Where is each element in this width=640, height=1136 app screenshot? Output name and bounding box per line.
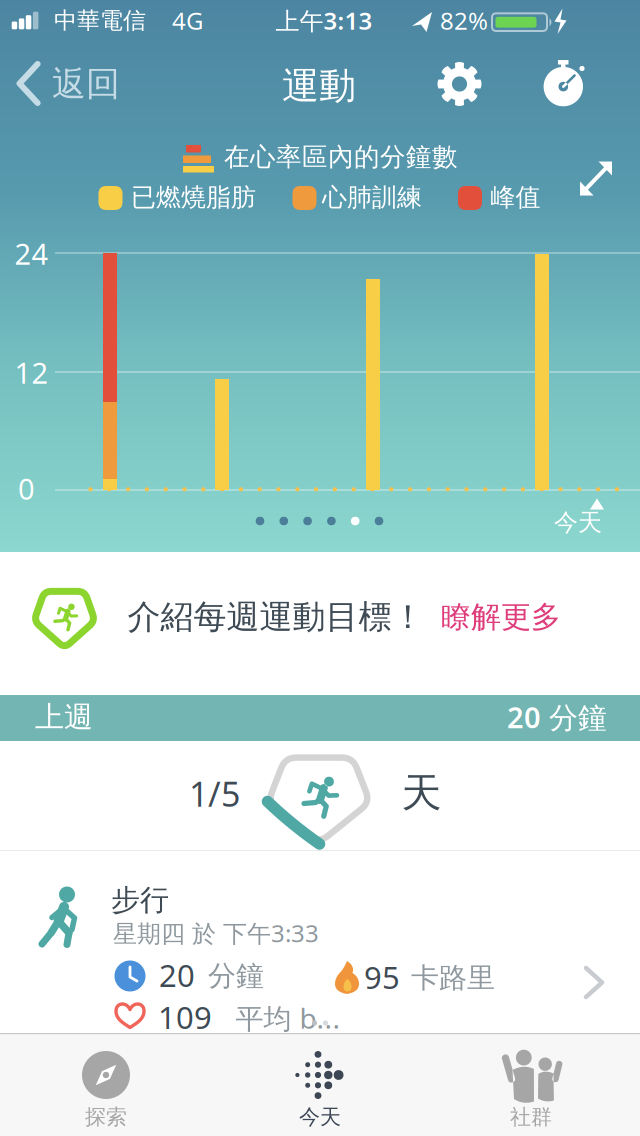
button[interactable]: 探索 xyxy=(0,1033,212,1136)
staticText: 今天 xyxy=(299,1104,341,1130)
staticText: 星期四 於 下午3:33 xyxy=(113,917,319,949)
staticText: 瞭解更多 xyxy=(441,598,561,636)
staticText: 已燃燒脂肪 xyxy=(131,182,256,213)
staticText: 上午3:13 xyxy=(275,4,372,37)
staticText: 運動 xyxy=(282,63,356,109)
staticText: 平均 b... xyxy=(235,999,340,1037)
staticText: 1/5 xyxy=(189,770,240,817)
staticText: 介紹每週運動目標！ xyxy=(127,596,424,638)
staticText: 109 xyxy=(158,996,212,1038)
button[interactable]: 步行 xyxy=(0,851,640,1033)
staticText: 0 xyxy=(18,469,35,508)
button[interactable]: 瞭解更多 xyxy=(0,552,640,695)
staticText: 探索 xyxy=(85,1104,127,1130)
staticText: 返回 xyxy=(52,63,120,105)
staticText: 峰值 xyxy=(490,182,540,213)
button[interactable]: 設定 xyxy=(431,56,487,112)
button[interactable]: 返回 xyxy=(0,54,124,118)
button[interactable]: 碼錶 xyxy=(532,55,598,115)
staticText: 心肺訓練 xyxy=(322,182,422,213)
staticText: 卡路里 xyxy=(411,960,495,996)
button[interactable]: 今天 xyxy=(214,1033,426,1136)
staticText: 今天 xyxy=(554,507,602,538)
staticText: 20 分鐘 xyxy=(507,697,607,737)
staticText: 上週 xyxy=(35,699,93,735)
staticText: 24 xyxy=(14,234,48,273)
staticText: 天 xyxy=(401,768,441,818)
staticText: 82% xyxy=(440,4,488,37)
staticText: 中華電信 xyxy=(54,6,146,35)
staticText: 20 xyxy=(159,954,195,996)
staticText: 步行 xyxy=(111,882,169,918)
staticText: 社群 xyxy=(510,1104,552,1130)
button[interactable]: 社群 xyxy=(425,1033,637,1136)
staticText: 4G xyxy=(172,4,203,37)
staticText: 在心率區內的分鐘數 xyxy=(224,141,458,173)
button[interactable]: 展開 xyxy=(568,150,624,206)
staticText: 分鐘 xyxy=(208,958,264,994)
staticText: 95 xyxy=(364,956,400,998)
staticText: 12 xyxy=(14,353,48,392)
